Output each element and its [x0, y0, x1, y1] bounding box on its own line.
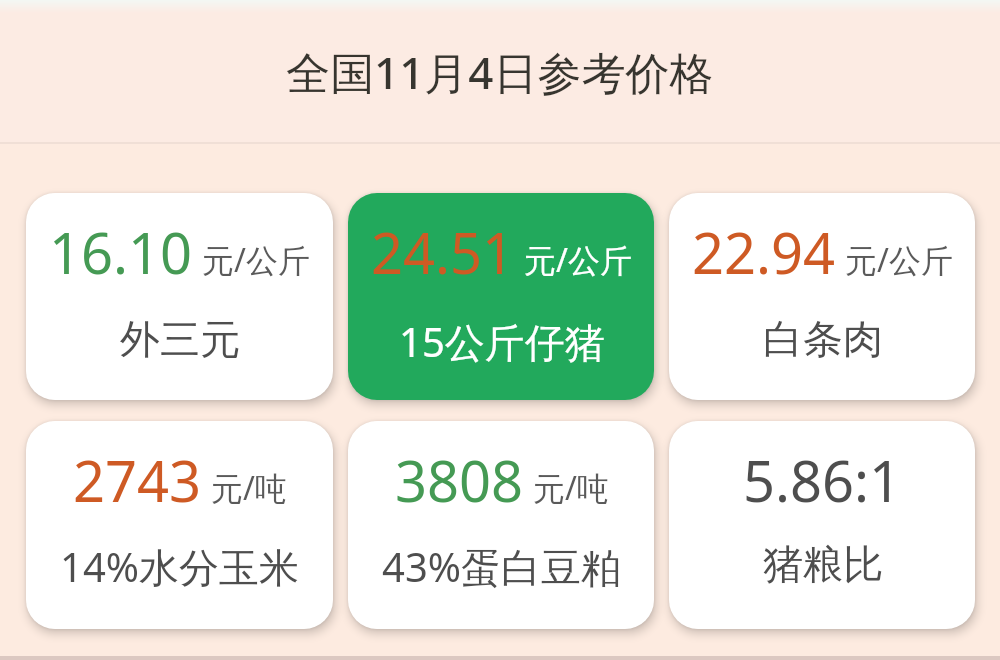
staticText: 5.86:1	[743, 442, 902, 518]
button[interactable]: 43%蛋白豆粕 3808	[348, 421, 654, 629]
staticText: 全国11月4日参考价格	[286, 42, 714, 102]
staticText: 43%蛋白豆粕	[382, 539, 621, 594]
staticText: 16.10	[49, 214, 193, 290]
staticText: 15公斤仔猪	[399, 314, 605, 369]
staticText: 元/公斤	[202, 238, 310, 282]
staticText: 24.51	[371, 214, 515, 290]
staticText: 外三元	[120, 314, 240, 364]
staticText: 3808	[395, 442, 524, 518]
staticText: 2743	[73, 442, 202, 518]
staticText: 14%水分玉米	[60, 539, 299, 594]
button[interactable]: 14%水分玉米 2743	[26, 421, 333, 629]
staticText: 元/公斤	[845, 238, 953, 282]
staticText: 元/公斤	[524, 238, 632, 282]
staticText: 22.94	[692, 214, 836, 290]
button[interactable]: 猪粮比 5.86:1	[669, 421, 975, 629]
staticText: 元/吨	[211, 466, 287, 510]
button[interactable]: 15公斤仔猪 24.51	[348, 193, 654, 400]
button[interactable]: 外三元 16.10	[26, 193, 333, 400]
staticText: 白条肉	[763, 314, 883, 364]
staticText: 猪粮比	[763, 539, 883, 589]
staticText: 元/吨	[533, 466, 609, 510]
button[interactable]: 白条肉 22.94	[669, 193, 975, 400]
